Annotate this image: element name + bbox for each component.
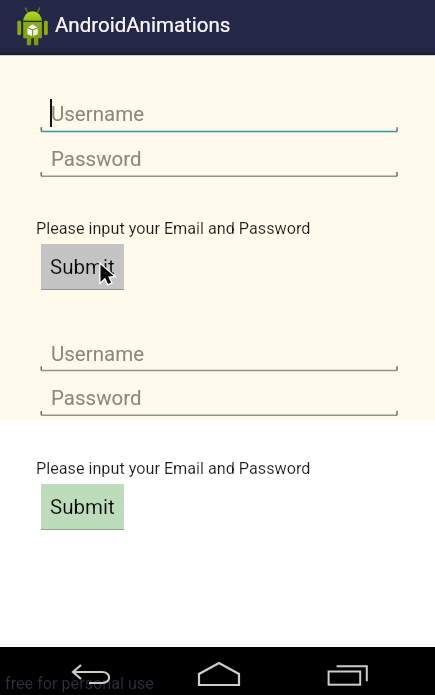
- staticText: Submit: [50, 495, 115, 519]
- button[interactable]: Recent apps: [324, 650, 372, 695]
- staticText: Username: [51, 102, 145, 126]
- staticText: Submit: [50, 255, 115, 279]
- staticText: Please input your Email and Password: [36, 459, 311, 478]
- button[interactable]: AndroidAnimations: [0, 0, 435, 55]
- button[interactable]: Password: [41, 375, 398, 416]
- button[interactable]: Submit: [41, 484, 124, 530]
- button[interactable]: Back: [67, 650, 115, 695]
- staticText: Password: [51, 147, 142, 171]
- button[interactable]: Password: [41, 136, 398, 177]
- staticText: free for personal use: [5, 674, 154, 693]
- staticText: Please input your Email and Password: [36, 219, 311, 238]
- staticText: Username: [51, 342, 145, 366]
- button[interactable]: Username: [41, 91, 398, 132]
- button[interactable]: Home: [195, 650, 243, 695]
- button[interactable]: Username: [41, 331, 398, 372]
- staticText: AndroidAnimations: [55, 13, 231, 37]
- button[interactable]: Submit: [41, 244, 124, 290]
- staticText: Password: [51, 386, 142, 410]
